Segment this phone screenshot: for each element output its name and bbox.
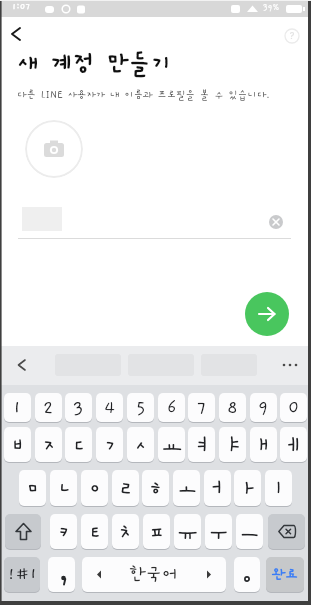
button[interactable]: ㅇ	[81, 470, 108, 506]
staticText: ㅠ	[177, 519, 199, 545]
staticText: ㅕ	[191, 432, 213, 458]
staticText: 7	[197, 398, 207, 418]
button[interactable]: ㅔ	[280, 427, 307, 462]
staticText: 5	[136, 398, 146, 418]
button[interactable]	[10, 354, 32, 376]
button[interactable]: 완료	[266, 557, 304, 592]
staticText: ㅎ	[145, 475, 167, 501]
staticText: 1:07	[12, 1, 31, 11]
button[interactable]: ㅗ	[173, 470, 200, 506]
button[interactable]: ㄱ	[96, 427, 123, 462]
button[interactable]: 6	[158, 393, 185, 422]
staticText: ㅅ	[130, 432, 152, 458]
button[interactable]: ㅌ	[81, 514, 108, 549]
button[interactable]	[282, 362, 300, 368]
button[interactable]: ㅊ	[112, 514, 139, 549]
staticText: ㅁ	[22, 475, 44, 501]
staticText: 3	[73, 398, 84, 418]
button[interactable]: ㄹ	[112, 470, 139, 506]
staticText: ㅣ	[268, 475, 290, 501]
button[interactable]	[25, 120, 83, 178]
button[interactable]: ㅂ	[4, 427, 31, 462]
staticText: ㅂ	[7, 432, 29, 458]
button[interactable]	[4, 22, 28, 46]
button[interactable]	[245, 292, 289, 336]
button[interactable]: ㅣ	[265, 470, 292, 506]
button[interactable]	[5, 514, 41, 549]
staticText: ㄱ	[99, 432, 121, 458]
staticText: 0	[288, 398, 300, 418]
button[interactable]: ?	[284, 28, 300, 44]
staticText: 9	[258, 398, 269, 418]
button[interactable]: 1	[4, 393, 31, 422]
button[interactable]: ㅅ	[127, 427, 154, 462]
staticText: !#1	[7, 565, 38, 584]
button[interactable]: ㅓ	[204, 470, 231, 506]
button[interactable]: ㅜ	[205, 514, 232, 549]
button[interactable]	[268, 514, 305, 549]
button[interactable]: ㅋ	[50, 514, 77, 549]
button[interactable]: ㅡ	[236, 514, 263, 549]
button[interactable]: ㅁ	[19, 470, 46, 506]
staticText: ㅋ	[53, 519, 75, 545]
staticText: 2	[43, 398, 54, 418]
staticText: 39%	[263, 3, 280, 12]
button[interactable]: ㅏ	[234, 470, 261, 506]
button[interactable]	[269, 215, 283, 229]
staticText: 6	[167, 398, 177, 418]
staticText: ㅍ	[146, 519, 168, 545]
button[interactable]: ㅎ	[142, 470, 169, 506]
staticText: 완료	[272, 567, 299, 583]
button[interactable]: ㅍ	[143, 514, 170, 549]
button[interactable]	[234, 557, 260, 592]
button[interactable]: ㅈ	[35, 427, 62, 462]
staticText: ㄹ	[115, 475, 137, 501]
button[interactable]: ㄷ	[65, 427, 92, 462]
staticText: 한국어	[129, 565, 179, 585]
staticText: 8	[227, 398, 238, 418]
button[interactable]: ㄴ	[50, 470, 77, 506]
button[interactable]	[48, 557, 75, 592]
button[interactable]: 4	[96, 393, 123, 422]
button[interactable]: ㅑ	[219, 427, 246, 462]
staticText: ?	[289, 31, 295, 42]
staticText: 1	[13, 398, 22, 418]
button[interactable]: 2	[35, 393, 62, 422]
staticText: 다른 LINE 사용자가 내 이름과 프로필을 볼 수 있습니다.	[17, 89, 271, 100]
staticText: ㅗ	[176, 475, 198, 501]
button[interactable]: 5	[127, 393, 154, 422]
staticText: ㅡ	[239, 519, 261, 545]
staticText: ㅈ	[38, 432, 60, 458]
button[interactable]: 8	[219, 393, 246, 422]
button[interactable]: 0	[280, 393, 307, 422]
staticText: ㅔ	[283, 432, 305, 458]
button[interactable]: !#1	[4, 557, 40, 592]
staticText: ㅛ	[161, 432, 183, 458]
staticText: ㅌ	[84, 519, 106, 545]
button[interactable]: ㅠ	[174, 514, 201, 549]
button[interactable]: ㅐ	[250, 427, 277, 462]
staticText: ㅐ	[253, 432, 275, 458]
staticText: ㅏ	[237, 475, 259, 501]
button[interactable]: 9	[250, 393, 277, 422]
button[interactable]: 7	[188, 393, 215, 422]
staticText: ㄷ	[68, 432, 90, 458]
button[interactable]: ㅛ	[158, 427, 185, 462]
button[interactable]: 한국어	[82, 557, 226, 592]
staticText: ㅜ	[208, 519, 230, 545]
staticText: ㅑ	[222, 432, 244, 458]
staticText: 새 계정 만들기	[17, 50, 173, 77]
staticText: ㅊ	[115, 519, 137, 545]
staticText: ㅇ	[84, 475, 106, 501]
staticText: ㄴ	[53, 475, 75, 501]
staticText: ㅓ	[207, 475, 229, 501]
staticText: 4	[104, 398, 116, 418]
button[interactable]: ㅕ	[188, 427, 215, 462]
button[interactable]: 3	[65, 393, 92, 422]
